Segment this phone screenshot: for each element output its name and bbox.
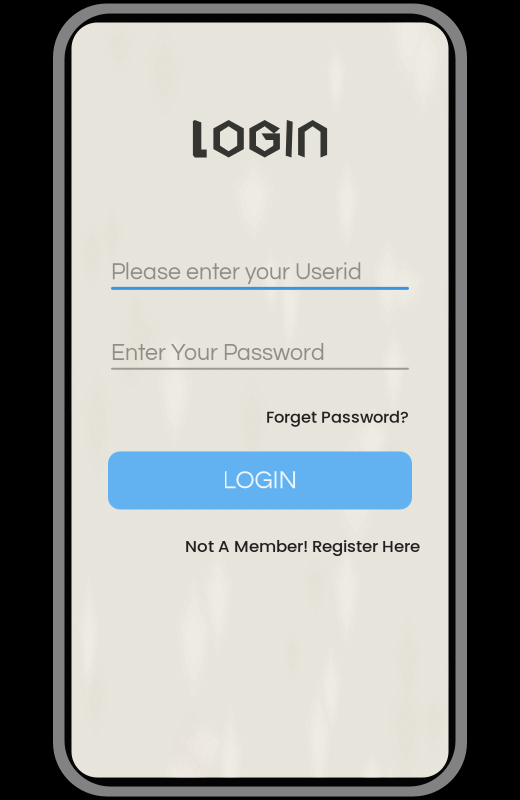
staticText: Enter Your Password: [111, 341, 325, 365]
button[interactable]: Forget Password?: [266, 406, 409, 428]
staticText: Forget Password?: [266, 406, 409, 428]
staticText: Not A Member! Register Here: [185, 534, 420, 558]
button[interactable]: LOGIN: [108, 451, 412, 509]
staticText: Please enter your Userid: [111, 260, 362, 284]
button[interactable]: Not A Member! Register Here: [185, 534, 420, 558]
staticText: LOGIN: [222, 467, 297, 493]
